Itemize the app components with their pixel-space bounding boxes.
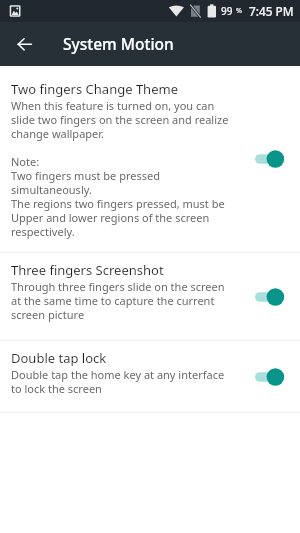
button[interactable]: Back [0,22,48,66]
button[interactable]: Double tap lock [0,341,300,412]
staticText: Double tap lock [11,349,107,367]
staticText: 7:45 PM [249,3,294,19]
staticText: % [236,6,242,16]
button[interactable]: Toggle [254,148,288,170]
staticText: Two fingers Change Theme [11,80,178,98]
staticText: Double tap the home key at any interface… [11,367,225,396]
button[interactable]: Toggle [254,366,288,388]
staticText: When this feature is turned on, you can … [11,98,229,239]
staticText: Through three fingers slide on the scree… [11,279,225,322]
button[interactable]: Toggle [254,286,288,308]
button[interactable]: Two fingers Change Theme [0,66,300,252]
button[interactable]: Three fingers Screenshot [0,253,300,340]
staticText: 99 [221,4,233,18]
staticText: System Motion [63,33,174,54]
staticText: Three fingers Screenshot [11,261,164,279]
